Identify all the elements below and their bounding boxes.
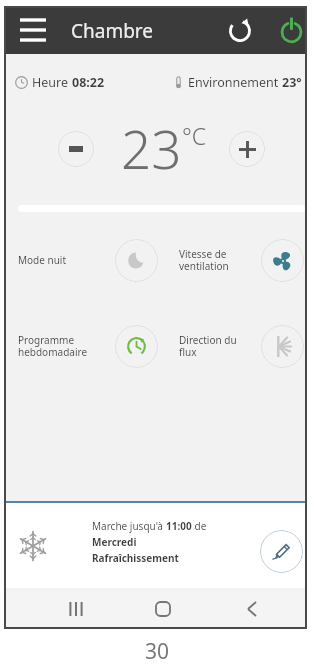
button[interactable]: Power <box>272 11 310 49</box>
staticText: Environnement <box>188 74 282 91</box>
staticText: 11:00 <box>166 519 192 533</box>
button[interactable]: Vitesse de ventilation <box>184 238 304 282</box>
staticText: Mercredi <box>92 535 137 549</box>
staticText: Programme hebdomadaire <box>18 333 110 359</box>
button[interactable]: Mode nuit <box>23 238 158 282</box>
staticText: Marche jusqu'à <box>92 519 166 533</box>
button[interactable]: Decrease temperature <box>58 131 94 167</box>
button[interactable]: Edit schedule <box>260 530 303 573</box>
staticText: Vitesse de ventilation <box>179 247 256 273</box>
button[interactable]: Menu <box>17 14 49 46</box>
button[interactable]: Refresh <box>221 11 259 49</box>
button[interactable]: Programme hebdomadaire <box>23 324 158 368</box>
button[interactable]: Back <box>238 595 266 623</box>
staticText: Mode nuit <box>18 253 110 267</box>
staticText: Direction du flux <box>179 333 256 359</box>
staticText: 30 <box>145 637 170 666</box>
staticText: Rafraîchissement <box>92 551 179 565</box>
staticText: de <box>192 519 207 533</box>
staticText: Heure <box>32 74 72 91</box>
button[interactable]: Direction du flux <box>184 324 304 368</box>
staticText: °C <box>182 120 207 151</box>
button[interactable]: Marche jusqu'à <box>4 503 307 588</box>
button[interactable]: Increase temperature <box>229 131 265 167</box>
button[interactable]: Recents <box>62 595 90 623</box>
staticText: 23° <box>282 74 302 91</box>
button[interactable]: Home <box>149 595 177 623</box>
staticText: 08:22 <box>72 74 105 91</box>
staticText: Chambre <box>71 18 154 44</box>
staticText: 23 <box>121 112 182 174</box>
